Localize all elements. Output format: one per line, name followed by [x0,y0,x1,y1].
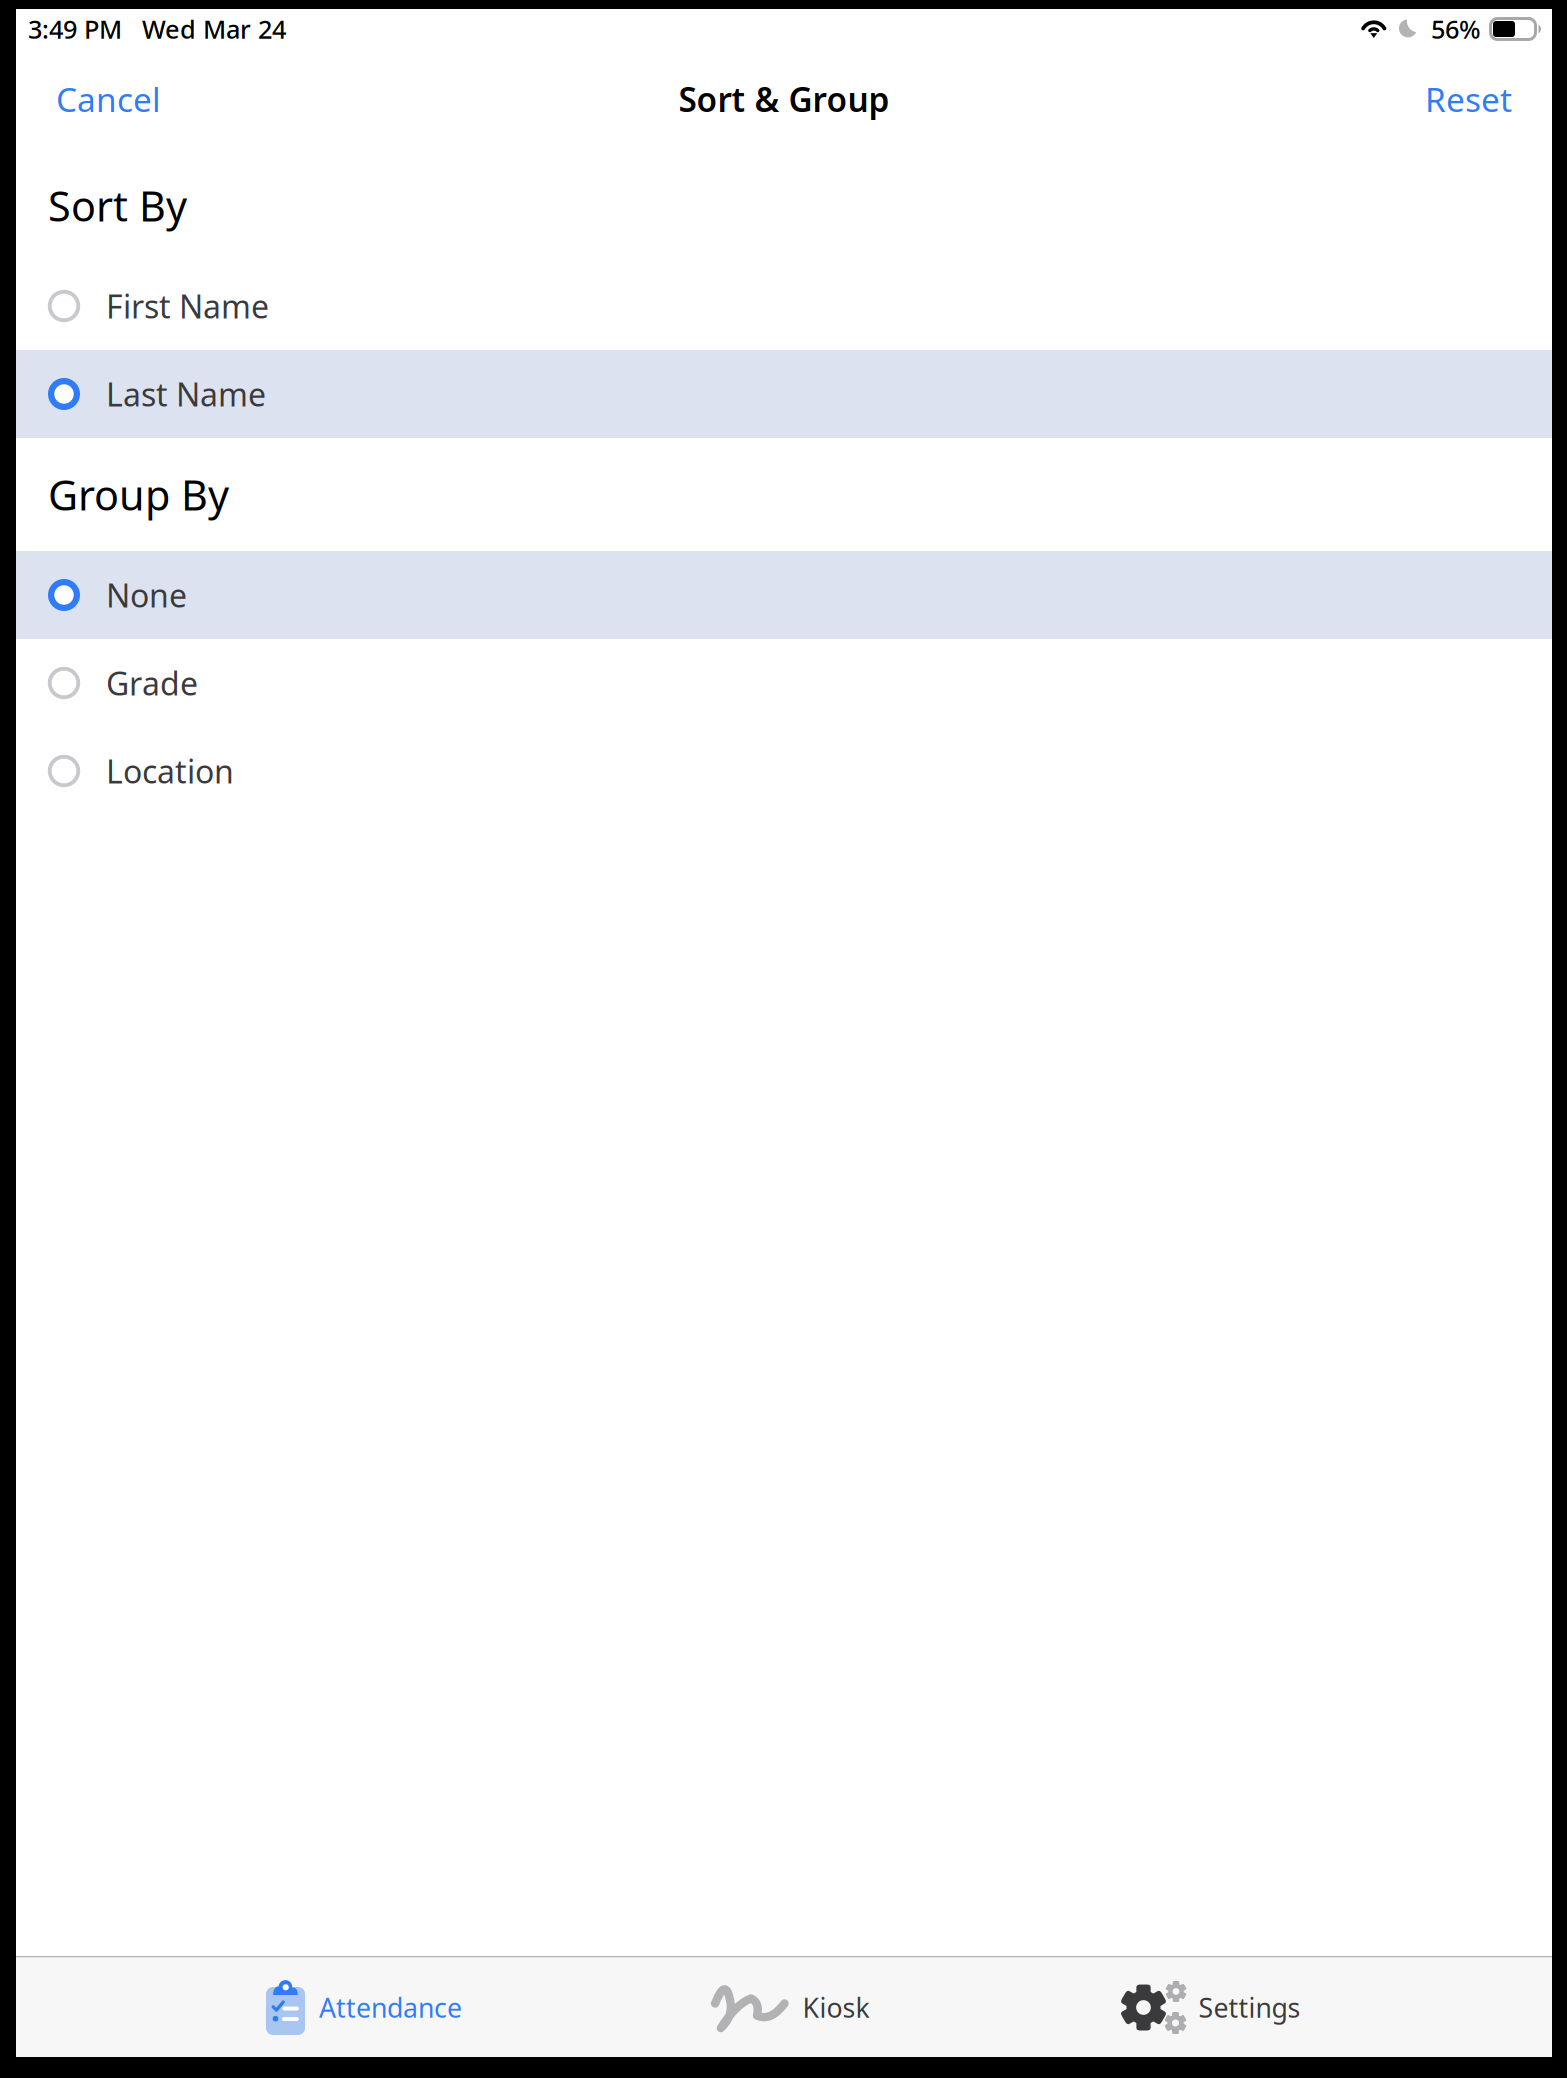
staticText: Last Name [106,373,266,415]
staticText: Kiosk [802,1990,869,2025]
staticText: Settings [1198,1990,1300,2025]
staticText: 3:49 PM [28,12,122,46]
button[interactable]: Kiosk [586,1958,993,2057]
button[interactable]: Attendance [140,1958,586,2057]
button[interactable]: Cancel [56,49,161,149]
button[interactable]: None [16,551,1552,639]
button[interactable]: Grade [16,639,1552,727]
button[interactable]: Last Name [16,350,1552,438]
staticText: Cancel [56,77,161,121]
staticText: Wed Mar 24 [142,12,286,46]
staticText: Reset [1425,77,1512,121]
button[interactable]: Reset [1425,49,1512,149]
staticText: Attendance [319,1990,462,2025]
staticText: 56% [1431,12,1481,46]
button[interactable]: Settings [993,1958,1427,2057]
staticText: Sort & Group [678,77,889,121]
staticText: First Name [106,285,269,327]
button[interactable]: Location [16,727,1552,815]
staticText: Group By [48,467,229,522]
staticText: Sort By [48,178,187,233]
staticText: Grade [106,662,198,704]
staticText: None [106,574,187,616]
staticText: Location [106,750,234,792]
button[interactable]: First Name [16,262,1552,350]
